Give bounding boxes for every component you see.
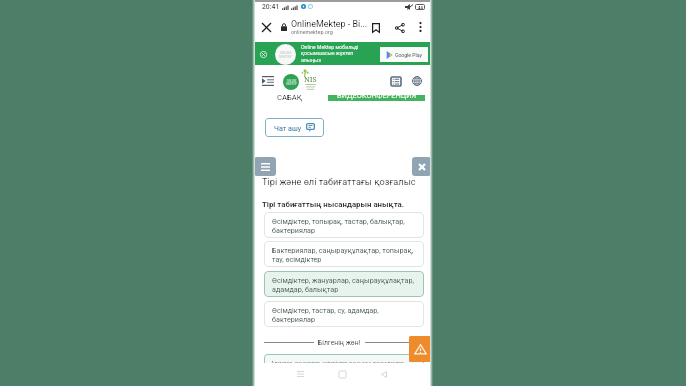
button[interactable]: Recent apps — [291, 365, 309, 383]
button[interactable]: Close tab — [259, 20, 274, 35]
staticText: Өсімдіктер, тастар, су, адамдар, бактери… — [272, 306, 379, 324]
button[interactable]: Чат ашу — [265, 118, 324, 137]
button[interactable]: Өсімдіктер, жануарлар, саңырауқұлақтар, … — [264, 271, 424, 297]
button[interactable]: Home — [333, 365, 351, 383]
button[interactable]: Bookmark — [368, 20, 383, 35]
button[interactable]: ВИДЕОКОНФЕРЕНЦИЯ — [328, 95, 425, 101]
staticText: Адамдар, жануарлар, өсімдіктер және саңы… — [271, 360, 404, 364]
staticText: 20:41 — [262, 3, 280, 11]
button[interactable]: Dismiss banner — [259, 50, 268, 59]
staticText: Online Mektep мобильді қосымшасын жүктеп… — [301, 44, 359, 64]
staticText: Өсімдіктер, топырақ, тастар, балықтар, б… — [272, 217, 405, 235]
button[interactable]: Table view — [389, 74, 403, 88]
staticText: Бактериялар, саңырауқұлақтар, топырақ, т… — [272, 246, 414, 264]
button[interactable]: Өсімдіктер, топырақ, тастар, балықтар, б… — [264, 212, 424, 238]
button[interactable]: Back — [375, 365, 393, 383]
button[interactable]: More options — [413, 20, 427, 34]
staticText: OnlineMektep - Bi... — [291, 19, 368, 29]
staticText: САБАҚ — [277, 95, 302, 102]
button[interactable]: Report a problem — [409, 336, 432, 362]
button[interactable]: Адамдар, жануарлар, өсімдіктер және саңы… — [264, 354, 424, 364]
staticText: ONLINE MEKTEP — [286, 79, 297, 85]
button[interactable]: Open site menu — [261, 74, 275, 88]
staticText: Google Play — [395, 52, 422, 58]
staticText: onlinemektep.org — [291, 29, 333, 35]
staticText: Білгенің жөн! — [318, 339, 361, 347]
staticText: Өсімдіктер, жануарлар, саңырауқұлақтар, … — [272, 276, 414, 294]
staticText: ВИДЕОКОНФЕРЕНЦИЯ — [337, 95, 417, 100]
staticText: ONLINE MEKTEP — [279, 51, 292, 59]
staticText: Тірі табиғаттың нысандарын анықта. — [262, 200, 405, 209]
button[interactable]: Share — [392, 20, 407, 35]
button[interactable] — [254, 42, 432, 65]
button[interactable]: Close lesson — [412, 157, 431, 176]
button[interactable]: Get it on Google Play — [380, 47, 428, 62]
staticText: Чат ашу — [274, 124, 302, 132]
button[interactable]: Өсімдіктер, тастар, су, адамдар, бактери… — [264, 301, 424, 327]
button[interactable]: Open lesson menu — [254, 157, 276, 176]
button[interactable]: ONLINE MEKTEP — [283, 74, 299, 90]
staticText: NIS — [304, 74, 317, 84]
staticText: Тірі және өлі табиғаттағы қозғалыс — [262, 176, 416, 187]
button[interactable]: Бактериялар, саңырауқұлақтар, топырақ, т… — [264, 241, 424, 267]
staticText: 44 — [418, 5, 423, 10]
button[interactable]: Change language — [410, 74, 424, 88]
